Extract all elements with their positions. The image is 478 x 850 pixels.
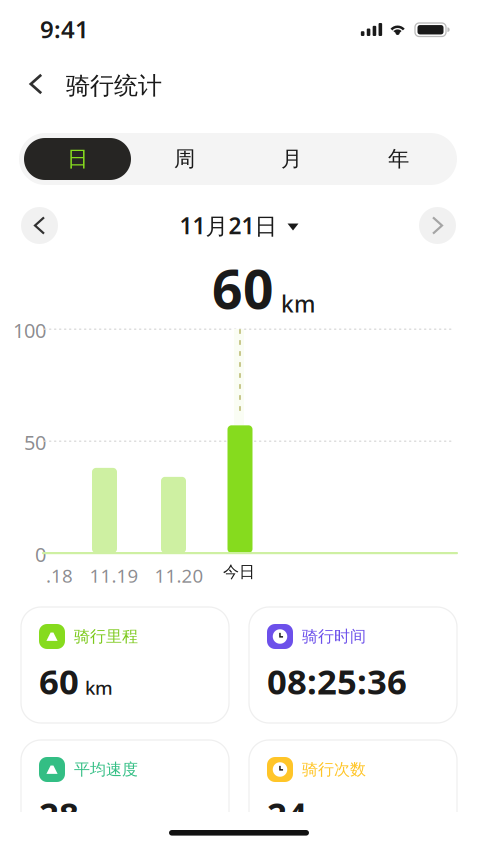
button[interactable]: 上一天 — [21, 207, 58, 244]
button[interactable]: 骑行里程 — [21, 607, 229, 723]
staticText: 60 — [212, 253, 274, 324]
button[interactable]: 骑行时间 — [249, 607, 457, 723]
staticText: 0 — [35, 541, 46, 568]
button[interactable]: 骑行次数 — [249, 740, 457, 850]
staticText: 11.19 — [89, 563, 138, 588]
staticText: 骑行里程 — [74, 627, 138, 646]
button[interactable]: 年 — [345, 138, 452, 180]
staticText: km — [85, 675, 113, 700]
staticText: 骑行时间 — [302, 627, 366, 646]
staticText: 28 — [39, 791, 79, 837]
staticText: 50 — [24, 429, 46, 456]
button[interactable]: 下一天 — [419, 207, 456, 244]
staticText: 平均速度 — [74, 760, 138, 779]
button[interactable]: 返回 — [16, 64, 56, 104]
button[interactable]: 周 — [131, 138, 238, 180]
button[interactable]: 11月21日 — [128, 206, 350, 245]
staticText: 周 — [174, 146, 195, 172]
staticText: 骑行次数 — [302, 760, 366, 779]
staticText: 月 — [281, 146, 302, 172]
staticText: 08:25:36 — [267, 658, 407, 704]
button[interactable]: 日 — [24, 138, 131, 180]
button[interactable]: 平均速度 — [21, 740, 229, 850]
staticText: 骑行统计 — [66, 71, 162, 100]
staticText: 年 — [388, 146, 409, 172]
staticText: .18 — [46, 563, 73, 588]
staticText: 今日 — [223, 562, 255, 582]
staticText: 11.20 — [154, 563, 203, 588]
staticText: 100 — [13, 317, 46, 344]
staticText: 9:41 — [40, 13, 89, 45]
staticText: 11月21日 — [179, 210, 277, 240]
staticText: km — [281, 289, 315, 319]
staticText: 60 — [39, 658, 79, 704]
staticText: 日 — [67, 146, 88, 172]
button[interactable]: 月 — [238, 138, 345, 180]
staticText: 24 — [267, 791, 307, 837]
